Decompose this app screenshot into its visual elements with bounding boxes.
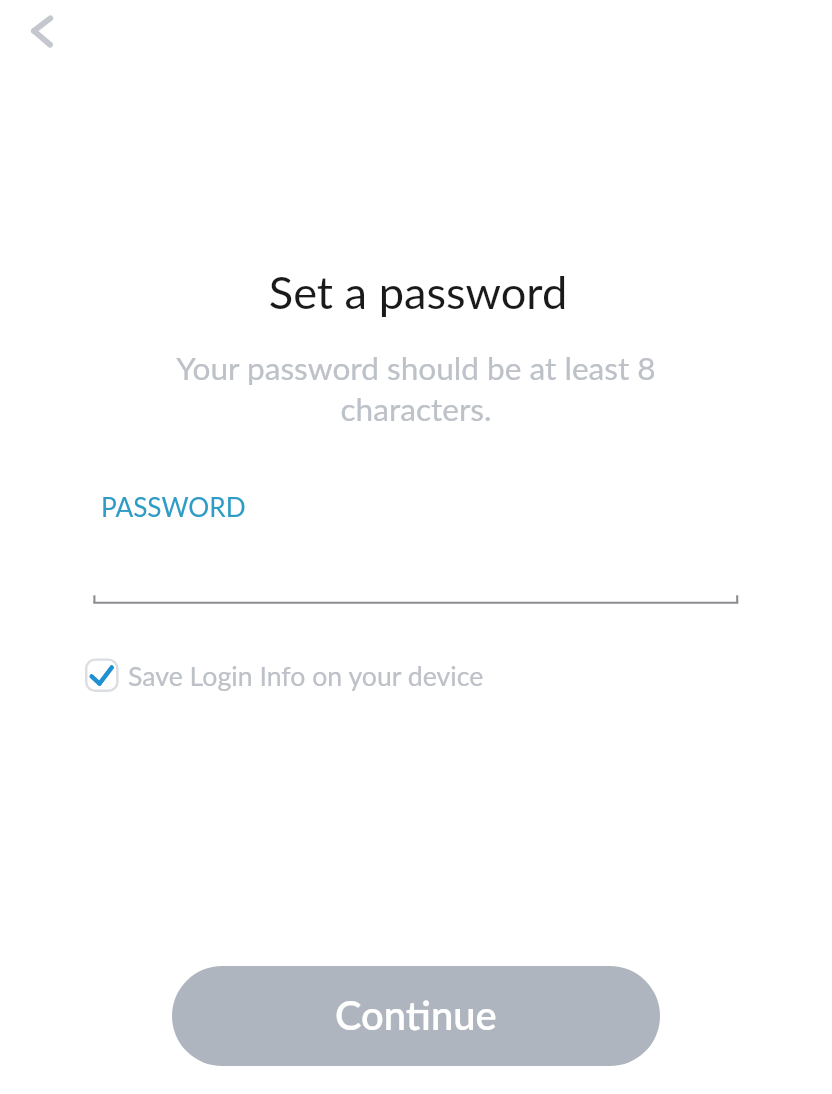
staticText: Save Login Info on your device	[128, 660, 484, 692]
staticText: Continue	[335, 991, 497, 1039]
button[interactable]: Continue	[172, 966, 660, 1066]
staticText: Your password should be at least 8 chara…	[60, 349, 772, 427]
button[interactable]: Save Login Info on your device	[85, 656, 484, 696]
staticText: Set a password	[2, 264, 832, 318]
button[interactable]: Back	[0, 0, 84, 80]
staticText: PASSWORD	[101, 491, 246, 522]
